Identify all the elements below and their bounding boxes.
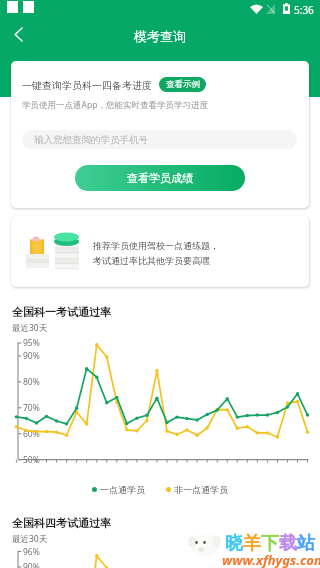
- staticText: 60%: [23, 428, 40, 440]
- staticText: 全国科一考试通过率: [12, 305, 111, 319]
- staticText: 考试通过率比其他学员要高嘿: [93, 255, 210, 266]
- button[interactable]: 查看示例: [159, 77, 206, 92]
- staticText: 站: [297, 532, 315, 555]
- staticText: 最近30天: [12, 322, 48, 334]
- staticText: 95%: [23, 337, 40, 349]
- staticText: 学员使用一点通App，您能实时查看学员学习进度: [22, 99, 208, 111]
- button[interactable]: 推荐学员使用驾校一点通练题，: [11, 216, 309, 287]
- staticText: 96%: [23, 546, 40, 558]
- staticText: 输入您想查阅的学员手机号: [34, 134, 148, 146]
- staticText: 5:36: [294, 3, 314, 17]
- staticText: 80%: [23, 376, 40, 388]
- staticText: 推荐学员使用驾校一点通练题，: [93, 240, 219, 251]
- staticText: 70%: [23, 402, 40, 414]
- staticText: 90%: [23, 561, 40, 568]
- staticText: 全国科四考试通过率: [12, 516, 111, 530]
- staticText: 非一点通学员: [174, 484, 228, 495]
- staticText: 一键查询学员科一四备考进度: [22, 79, 152, 92]
- staticText: 载: [279, 532, 297, 555]
- staticText: 查看学员成绩: [127, 171, 193, 185]
- staticText: 最近30天: [12, 533, 48, 545]
- staticText: 下: [261, 532, 279, 555]
- staticText: 90%: [23, 350, 40, 362]
- staticText: 一点通学员: [100, 484, 145, 495]
- staticText: 查看示例: [166, 79, 200, 90]
- staticText: 模考查询: [134, 28, 186, 44]
- button[interactable]: 输入您想查阅的学员手机号: [22, 130, 297, 149]
- button[interactable]: Back: [1, 17, 35, 51]
- staticText: 羊: [243, 532, 261, 555]
- staticText: 晓: [225, 532, 243, 555]
- staticText: 50%: [23, 454, 40, 466]
- staticText: www.xfhygs.com: [222, 551, 320, 568]
- button[interactable]: 查看学员成绩: [75, 165, 245, 191]
